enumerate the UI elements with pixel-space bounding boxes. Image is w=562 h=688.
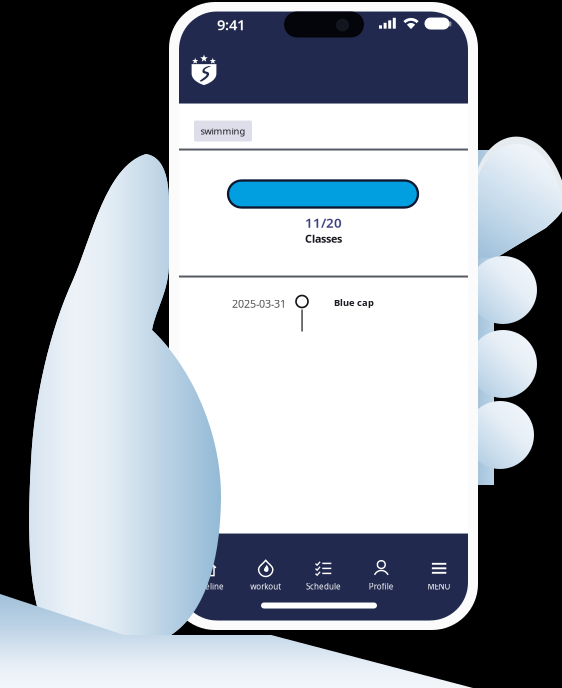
staticText: 11/20 <box>305 214 342 231</box>
staticText: 9:41 <box>217 15 245 34</box>
button[interactable]: Schedule <box>295 555 352 595</box>
button[interactable]: Timeline <box>179 555 237 595</box>
staticText: workout <box>250 581 281 592</box>
staticText: 2025-03-31 <box>232 296 286 311</box>
button[interactable]: Profile <box>352 555 410 595</box>
staticText: Schedule <box>306 581 341 592</box>
button[interactable]: swimming <box>194 120 252 141</box>
staticText: MENU <box>428 581 451 592</box>
button[interactable]: Home <box>190 52 218 86</box>
button[interactable]: MENU <box>410 555 468 595</box>
button[interactable]: workout <box>237 555 295 595</box>
staticText: Profile <box>369 581 394 592</box>
staticText: Classes <box>305 231 342 246</box>
staticText: swimming <box>200 125 245 137</box>
staticText: Timeline <box>192 581 224 592</box>
staticText: Blue cap <box>334 296 374 309</box>
